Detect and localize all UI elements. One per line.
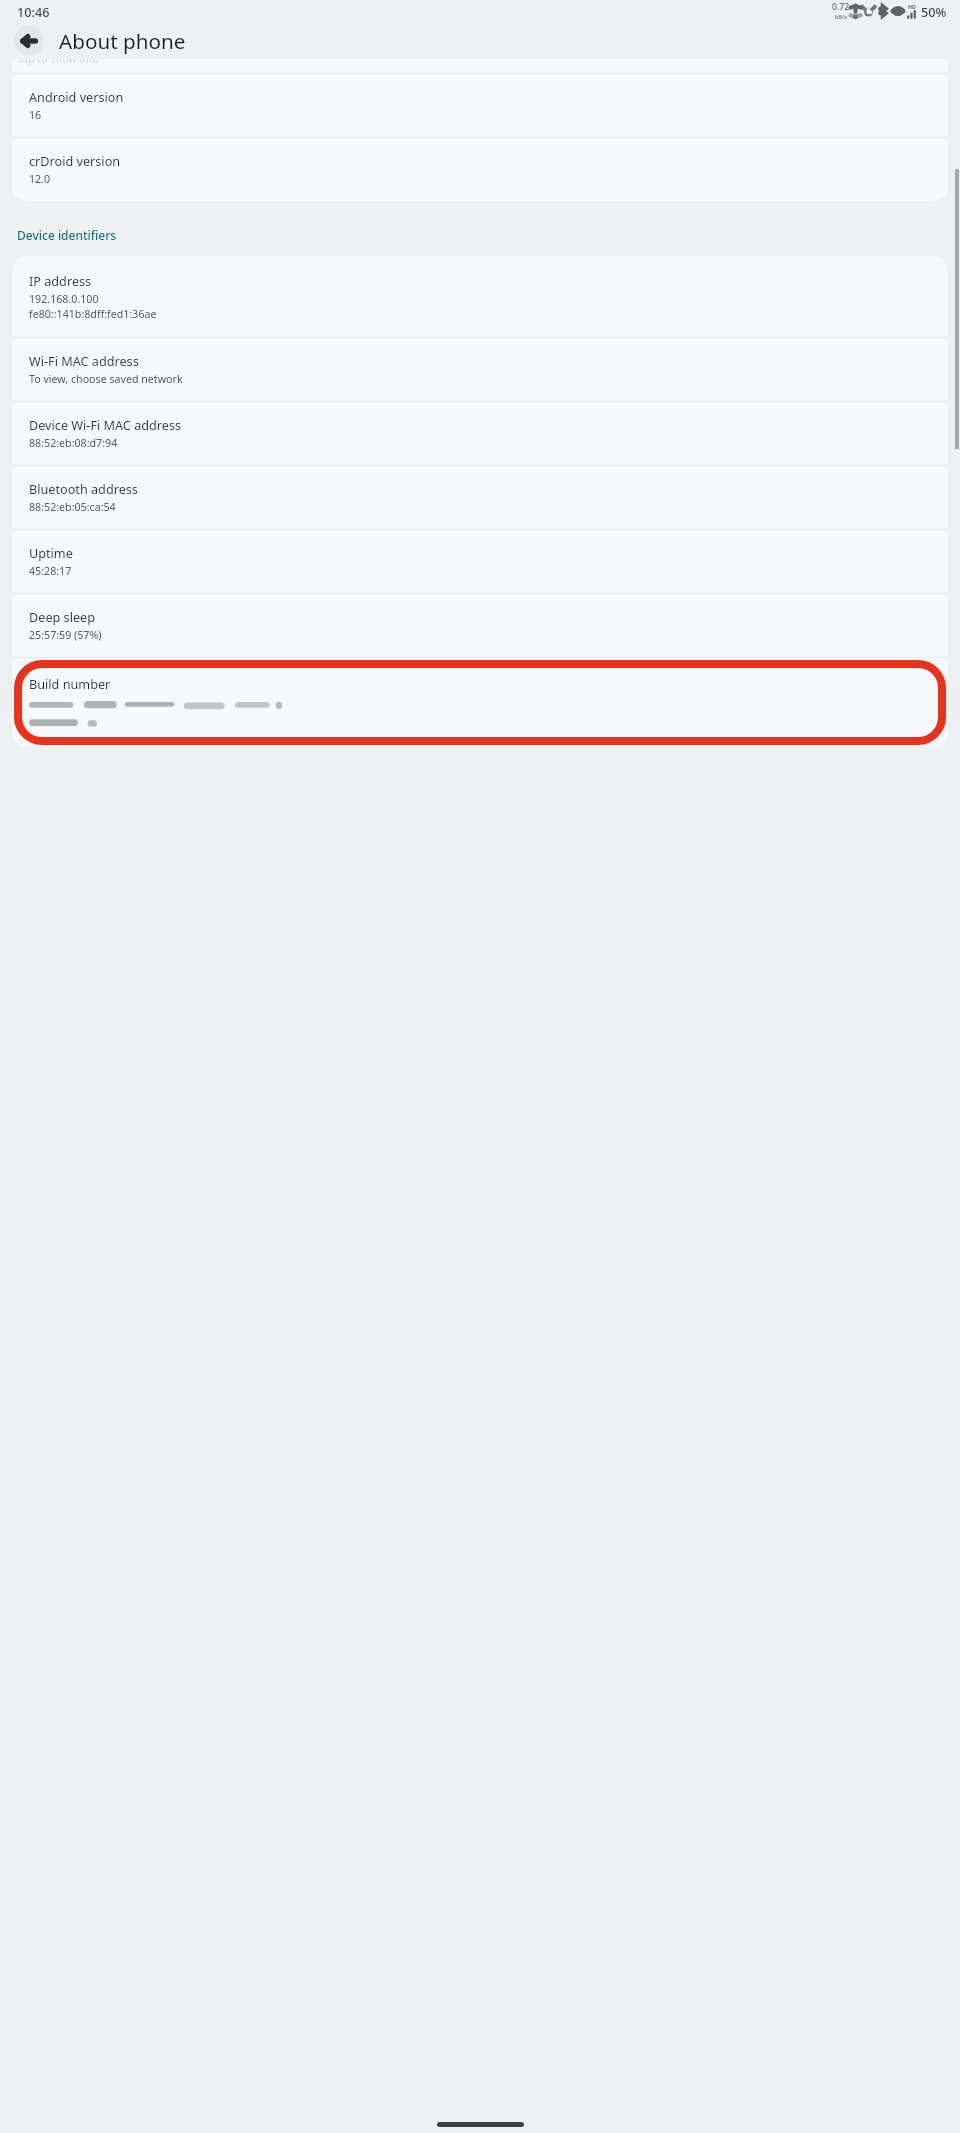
- button[interactable]: IP address: [12, 256, 948, 337]
- button[interactable]: Uptime: [12, 530, 948, 593]
- staticText: Deep sleep: [29, 608, 95, 625]
- staticText: kB/s: [835, 13, 847, 21]
- button[interactable]: Deep sleep: [12, 594, 948, 657]
- staticText: 25:57:59 (57%): [29, 628, 102, 643]
- staticText: 88:52:eb:08:d7:94: [29, 436, 118, 451]
- staticText: 16: [29, 108, 42, 123]
- staticText: 88:52:eb:05:ca:54: [29, 500, 116, 515]
- staticText: Tap to show info: [17, 59, 99, 66]
- button[interactable]: Device Wi-Fi MAC address: [12, 402, 948, 465]
- staticText: Build number: [29, 675, 111, 692]
- button[interactable]: Back: [14, 26, 44, 56]
- staticText: Android version: [29, 88, 124, 105]
- staticText: fe80::141b:8dff:fed1:36ae: [29, 307, 157, 322]
- staticText: 45:28:17: [29, 564, 72, 579]
- staticText: 0.72: [832, 1, 850, 13]
- staticText: IP address: [29, 272, 92, 289]
- staticText: crDroid version: [29, 152, 121, 169]
- staticText: 50%: [921, 3, 947, 20]
- button[interactable]: Bluetooth address: [12, 466, 948, 529]
- staticText: Uptime: [29, 544, 73, 561]
- button[interactable]: Wi-Fi MAC address: [12, 338, 948, 401]
- staticText: Bluetooth address: [29, 480, 138, 497]
- staticText: Wi-Fi MAC address: [29, 352, 139, 369]
- staticText: To view, choose saved network: [29, 372, 183, 387]
- staticText: Device Wi-Fi MAC address: [29, 416, 182, 433]
- staticText: Device identifiers: [17, 227, 117, 243]
- button[interactable]: crDroid version: [12, 138, 948, 201]
- staticText: 192.168.0.100: [29, 292, 99, 307]
- button[interactable]: Build number: [14, 660, 946, 745]
- button[interactable]: Android version: [12, 74, 948, 137]
- staticText: 10:46: [17, 3, 50, 20]
- staticText: About phone: [59, 27, 186, 55]
- staticText: 12.0: [29, 172, 51, 187]
- staticText: HD: [908, 3, 916, 10]
